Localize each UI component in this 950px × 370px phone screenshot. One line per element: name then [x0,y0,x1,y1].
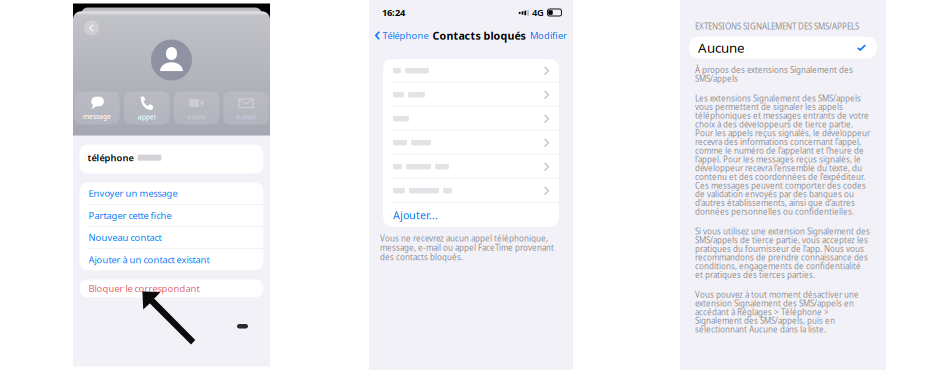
button[interactable] [383,179,559,202]
button[interactable]: Nouveau contact [79,227,263,248]
staticText: Téléphone [382,29,428,42]
staticText: Vous pouvez à tout moment désactiver une… [695,289,859,335]
staticText: e-mail [236,113,256,121]
staticText: Vous ne recevrez aucun appel téléphoniqu… [380,233,554,262]
button[interactable]: Envoyer un message [79,182,263,204]
staticText: message [83,112,111,121]
staticText: Partager cette fiche [88,209,171,222]
button[interactable]: vidéo [174,91,219,124]
staticText: Les extensions Signalement des SMS/appel… [695,93,870,217]
staticText: 4G [532,6,544,19]
button[interactable]: Partager cette fiche [79,205,263,226]
button[interactable]: appel [124,91,169,124]
button[interactable]: Aucune [689,37,877,59]
button[interactable] [383,155,559,178]
button[interactable]: Ajouter... [383,203,559,227]
staticText: Aucune [698,39,745,56]
staticText: Modifier [530,29,567,42]
staticText: Si vous utilisez une extension Signaleme… [695,226,870,280]
staticText: Contacts bloqués [432,28,525,43]
staticText: À propos des extensions Signalement des … [695,65,853,84]
staticText: Envoyer un message [88,187,177,199]
button[interactable]: Téléphone [369,25,430,46]
staticText: Ajouter à un contact existant [88,253,209,266]
button[interactable]: Retour [81,17,102,38]
staticText: Bloquer le correspondant [88,282,199,294]
staticText: vidéo [187,113,205,121]
button[interactable]: Modifier [530,25,573,46]
staticText: Ajouter... [393,208,438,222]
staticText: appel [138,113,156,121]
button[interactable]: message [74,91,120,124]
button[interactable] [383,59,559,82]
staticText: EXTENSIONS SIGNALEMENT DES SMS/APPELS [695,21,859,32]
button[interactable]: e-mail [223,91,269,124]
button[interactable] [383,131,559,154]
staticText: Nouveau contact [88,231,161,244]
staticText: téléphone [87,151,133,164]
button[interactable]: Ajouter à un contact existant [79,249,263,270]
button[interactable]: Bloquer le correspondant [79,279,263,297]
button[interactable] [383,83,559,106]
staticText: 16:24 [382,6,405,19]
button[interactable] [383,107,559,130]
